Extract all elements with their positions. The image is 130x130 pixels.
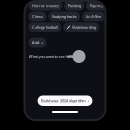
- staticText: Add +: [32, 40, 43, 45]
- staticText: Sci-fi film: [85, 14, 101, 19]
- button[interactable]: Studying hacks: [48, 11, 80, 21]
- staticText: College football: [32, 24, 58, 30]
- staticText: Chess: [32, 14, 43, 19]
- staticText: What you want to see here at: [28, 54, 77, 59]
- button[interactable]: Pop music: [86, 1, 111, 11]
- staticText: Skateboarding: [72, 24, 96, 30]
- button[interactable]: Painting: [64, 1, 84, 11]
- button[interactable]: Chess: [28, 11, 46, 21]
- staticText: Horror movies: [32, 3, 59, 8]
- staticText: Pop music: [89, 3, 107, 8]
- button[interactable]: Add +: [28, 38, 46, 47]
- staticText: ›: [88, 98, 89, 103]
- button[interactable]: Build your 2024 algorithm: [38, 95, 92, 106]
- staticText: Painting: [68, 3, 81, 8]
- button[interactable]: Sci-fi film: [82, 11, 105, 21]
- button[interactable]: College football: [28, 22, 61, 32]
- button[interactable]: Skateboarding: [63, 22, 99, 32]
- staticText: Studying hacks: [52, 14, 77, 19]
- button[interactable]: Horror movies: [28, 1, 62, 11]
- staticText: Build your 2024 algorithm: [41, 98, 86, 103]
